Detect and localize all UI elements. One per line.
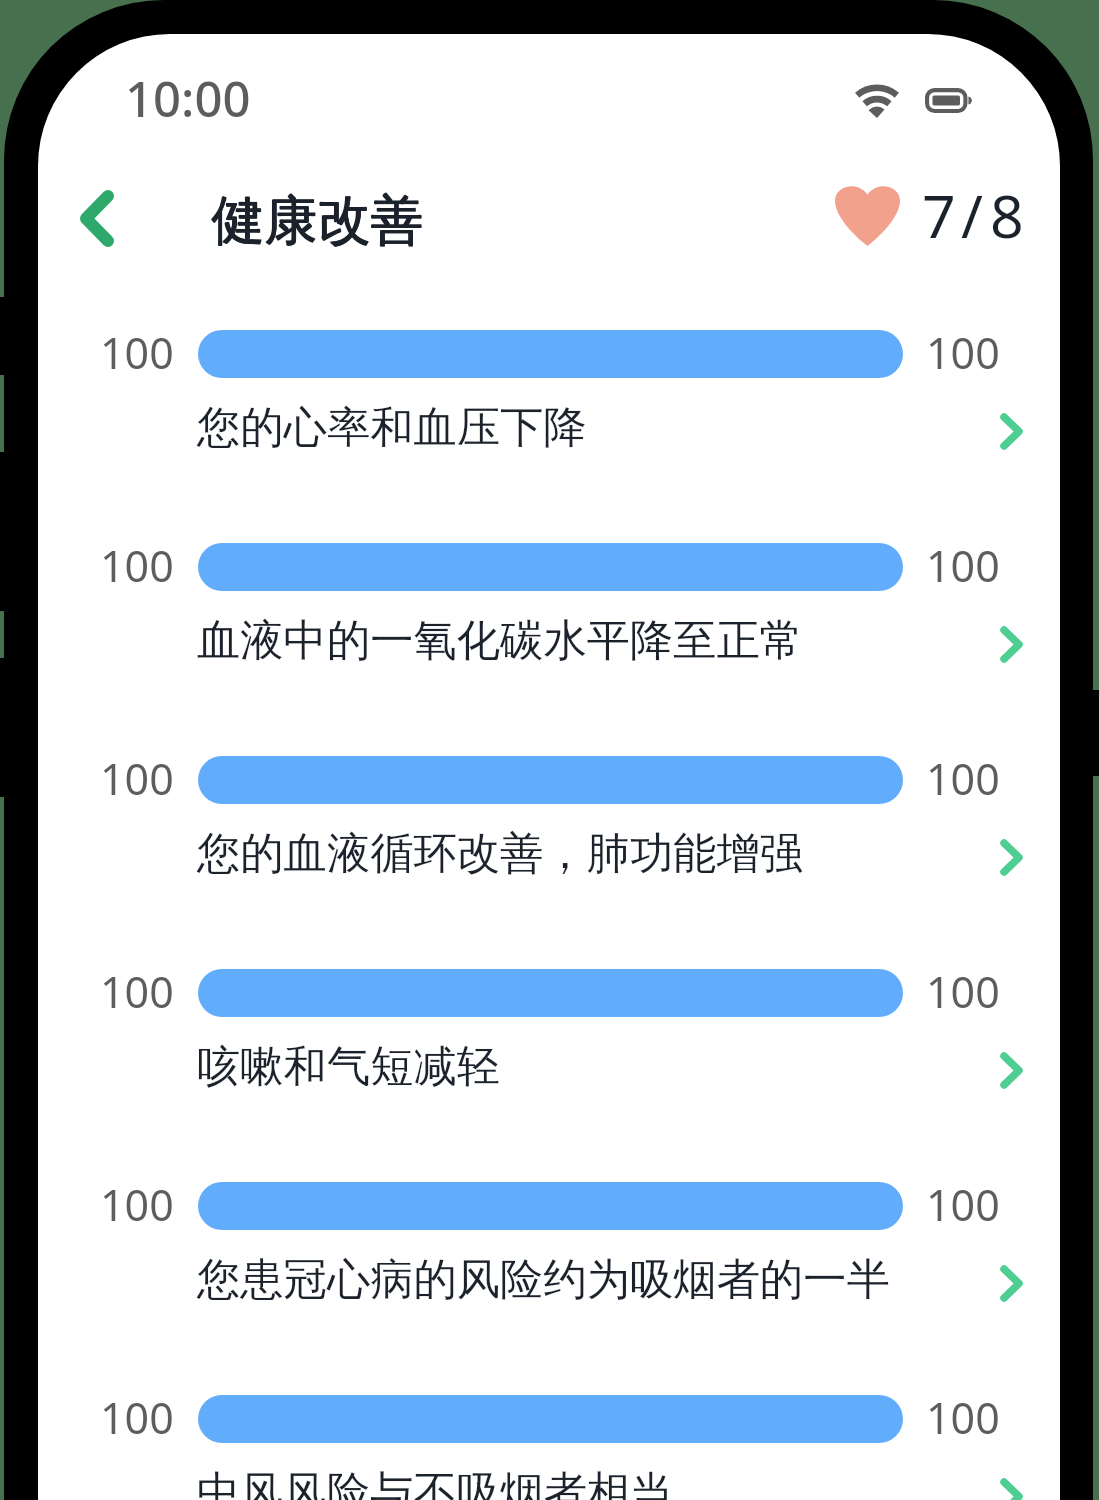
staticText: 血液中的一氧化碳水平降至正常: [197, 613, 804, 668]
staticText: 健康改善: [212, 187, 424, 254]
staticText: 100: [926, 1388, 1000, 1447]
button[interactable]: 100: [38, 752, 1060, 957]
button[interactable]: Back: [47, 168, 147, 268]
button[interactable]: 100: [38, 1391, 1060, 1500]
other: Battery: [925, 88, 973, 113]
staticText: 100: [926, 536, 1000, 595]
staticText: 健康改善: [211, 187, 423, 254]
staticText: 您的血液循环改善，肺功能增强: [197, 826, 804, 881]
staticText: 您患冠心病的风险约为吸烟者的一半: [197, 1252, 890, 1307]
staticText: 咳嗽和气短减轻: [197, 1039, 501, 1094]
staticText: 健康改善: [212, 188, 424, 255]
staticText: 7: [922, 175, 956, 255]
staticText: 8: [990, 175, 1024, 255]
staticText: 100: [926, 1175, 1000, 1234]
button[interactable]: 100: [38, 539, 1060, 744]
button[interactable]: 100: [38, 965, 1060, 1170]
staticText: 100: [926, 323, 1000, 382]
staticText: 100: [100, 536, 174, 595]
button[interactable]: 100: [38, 326, 1060, 531]
staticText: /: [961, 175, 983, 255]
staticText: 100: [926, 962, 1000, 1021]
staticText: 健康改善: [212, 188, 424, 255]
staticText: 您的心率和血压下降: [197, 400, 587, 455]
staticText: 100: [100, 1388, 174, 1447]
staticText: 10:00: [125, 65, 251, 132]
staticText: 100: [100, 749, 174, 808]
staticText: 健康改善: [211, 188, 423, 255]
staticText: 健康改善: [212, 187, 424, 254]
staticText: 100: [100, 323, 174, 382]
button[interactable]: Progress 7 of 8: [818, 172, 1060, 290]
button[interactable]: 100: [38, 1178, 1060, 1383]
other: Wi-Fi: [853, 82, 901, 118]
staticText: 中风风险与不吸烟者相当: [197, 1465, 674, 1500]
staticText: 100: [100, 962, 174, 1021]
staticText: 100: [100, 1175, 174, 1234]
staticText: 100: [926, 749, 1000, 808]
